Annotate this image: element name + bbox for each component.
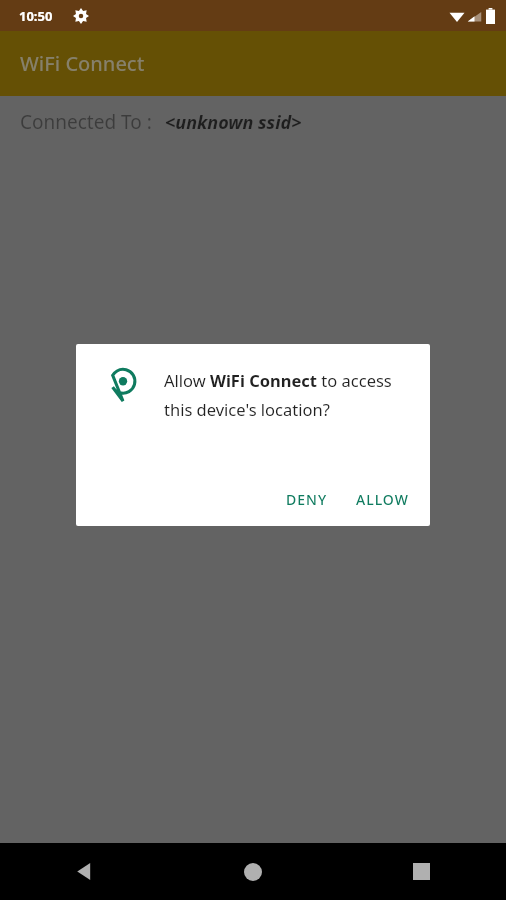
staticText: Connected To : bbox=[20, 109, 152, 135]
button[interactable]: ALLOW bbox=[344, 482, 421, 517]
button[interactable]: Back bbox=[0, 843, 168, 900]
staticText: 10:50 bbox=[19, 7, 53, 25]
button[interactable]: Recent apps bbox=[337, 843, 506, 900]
staticText: DENY bbox=[286, 490, 328, 509]
staticText: WiFi Connect bbox=[20, 50, 145, 77]
staticText: ALLOW bbox=[356, 490, 409, 509]
staticText: <unknown ssid> bbox=[165, 110, 302, 135]
button[interactable]: DENY bbox=[274, 482, 340, 517]
button[interactable]: Home bbox=[168, 843, 337, 900]
staticText: Allow WiFi Connect to access this device… bbox=[164, 369, 416, 421]
